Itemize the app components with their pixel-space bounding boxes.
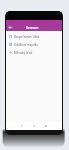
button[interactable]: Městský úřad [6,48,62,56]
button[interactable]: Recent apps [44,124,48,128]
button[interactable]: Oddělení majetku [6,40,62,48]
staticText: Oddělení majetku [14,43,39,47]
button[interactable]: Bezpečnostní úřad [6,32,62,40]
staticText: Seznam [26,25,39,29]
staticText: Městský úřad [14,51,33,55]
button[interactable]: Home [32,124,36,128]
button[interactable]: Back [7,24,13,30]
button[interactable]: Back [20,124,24,128]
staticText: Bezpečnostní úřad [14,35,40,39]
button[interactable]: Back [6,20,62,31]
